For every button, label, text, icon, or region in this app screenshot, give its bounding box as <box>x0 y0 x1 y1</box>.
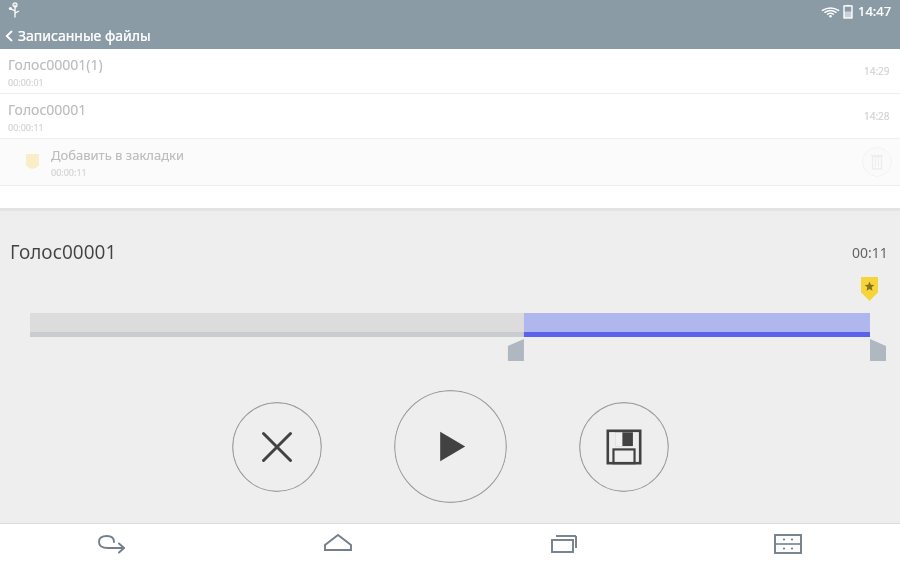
staticText: 14:47 <box>858 2 892 20</box>
button[interactable]: Home <box>225 524 450 563</box>
staticText: Голос00001(1) <box>8 55 103 74</box>
button[interactable]: Split screen <box>675 524 900 563</box>
button[interactable]: Cancel <box>232 402 322 492</box>
staticText: Добавить в закладки <box>51 146 185 164</box>
button[interactable]: Delete <box>862 147 892 177</box>
staticText: Голос00001 <box>8 100 87 119</box>
staticText: 00:00:01 <box>8 76 44 88</box>
button[interactable]: Back: Записанные файлы <box>0 22 900 49</box>
button[interactable]: Голос00001(1) <box>0 49 900 93</box>
button[interactable]: Save <box>579 402 669 492</box>
button[interactable]: Bookmark marker <box>861 277 878 301</box>
staticText: Записанные файлы <box>18 26 151 45</box>
button[interactable]: Голос00001 <box>0 94 900 138</box>
button[interactable]: Play <box>394 390 507 503</box>
staticText: 14:29 <box>864 64 890 78</box>
button[interactable]: Recents <box>450 524 675 563</box>
button[interactable]: Playback trim track <box>0 281 900 361</box>
staticText: Голос00001 <box>10 239 117 265</box>
button[interactable]: Добавить в закладки <box>0 139 900 185</box>
button[interactable]: Back <box>0 524 225 563</box>
staticText: 00:11 <box>852 243 888 262</box>
staticText: 14:28 <box>864 109 890 123</box>
staticText: 00:00:11 <box>51 166 87 178</box>
staticText: 00:00:11 <box>8 121 44 133</box>
